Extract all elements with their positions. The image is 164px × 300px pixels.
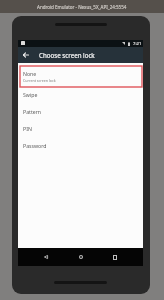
staticText: Choose screen lock: [39, 51, 95, 59]
staticText: PIN: [23, 125, 32, 132]
button[interactable]: Back: [40, 248, 52, 266]
button[interactable]: Swipe: [18, 86, 143, 103]
button[interactable]: Password: [18, 137, 143, 154]
button[interactable]: None: [18, 66, 143, 86]
button[interactable]: Pattern: [18, 103, 143, 120]
button[interactable]: Navigate up: [18, 47, 34, 63]
staticText: Pattern: [23, 108, 42, 115]
button[interactable]: Recent apps: [109, 248, 121, 266]
staticText: 7:21: [133, 41, 142, 47]
staticText: None: [23, 70, 37, 77]
staticText: Android Emulator - Nexus_5X_API_24:5554: [37, 4, 127, 10]
button[interactable]: Home: [75, 248, 87, 266]
button[interactable]: PIN: [18, 120, 143, 137]
staticText: Current screen lock: [23, 78, 56, 83]
staticText: Swipe: [23, 91, 38, 98]
staticText: Password: [23, 142, 47, 149]
